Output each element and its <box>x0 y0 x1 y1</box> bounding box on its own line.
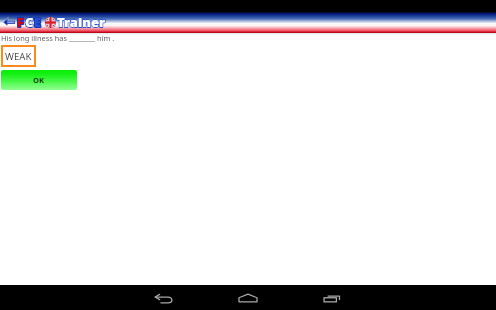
staticText: C <box>25 13 34 31</box>
staticText: E <box>34 13 42 31</box>
staticText: F <box>17 13 25 31</box>
staticText: OK <box>33 75 45 85</box>
button[interactable]: Back <box>153 285 175 310</box>
button[interactable]: Back <box>0 12 17 33</box>
staticText: F <box>17 13 25 31</box>
staticText: Trainer <box>57 13 106 31</box>
staticText: C <box>25 13 34 31</box>
button[interactable]: Home <box>237 285 259 310</box>
staticText: E <box>34 13 42 31</box>
button[interactable]: OK <box>1 70 77 90</box>
staticText: His long illness has ________ him . <box>1 33 115 43</box>
button[interactable]: WEAK <box>1 45 36 67</box>
staticText: Trainer <box>57 13 106 31</box>
button[interactable]: Recents <box>321 285 343 310</box>
staticText: WEAK <box>5 50 32 63</box>
